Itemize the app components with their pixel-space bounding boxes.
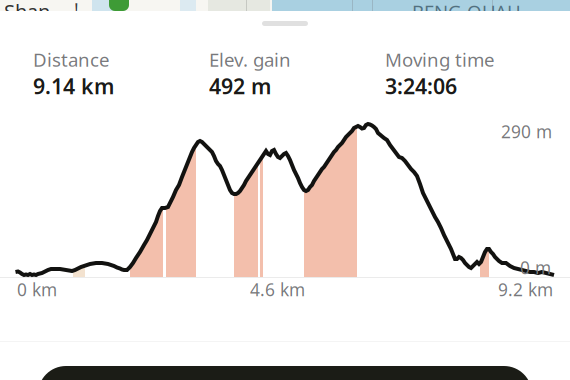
staticText: 3:24:06 bbox=[385, 72, 457, 100]
staticText: Moving time bbox=[385, 47, 495, 72]
staticText: Distance bbox=[33, 47, 110, 72]
staticText: 0 km bbox=[17, 278, 57, 301]
staticText: 492 m bbox=[209, 72, 271, 100]
button[interactable] bbox=[38, 366, 532, 380]
staticText: BENG QUAH bbox=[412, 0, 521, 24]
staticText: 0 m bbox=[520, 256, 551, 279]
staticText: 290 m bbox=[501, 120, 552, 143]
staticText: 9.14 km bbox=[33, 72, 114, 100]
staticText: Shan bbox=[4, 0, 50, 25]
staticText: 9.2 km bbox=[498, 278, 553, 301]
staticText: Elev. gain bbox=[209, 47, 291, 72]
staticText: ! bbox=[74, 0, 79, 21]
staticText: 4.6 km bbox=[250, 278, 305, 301]
